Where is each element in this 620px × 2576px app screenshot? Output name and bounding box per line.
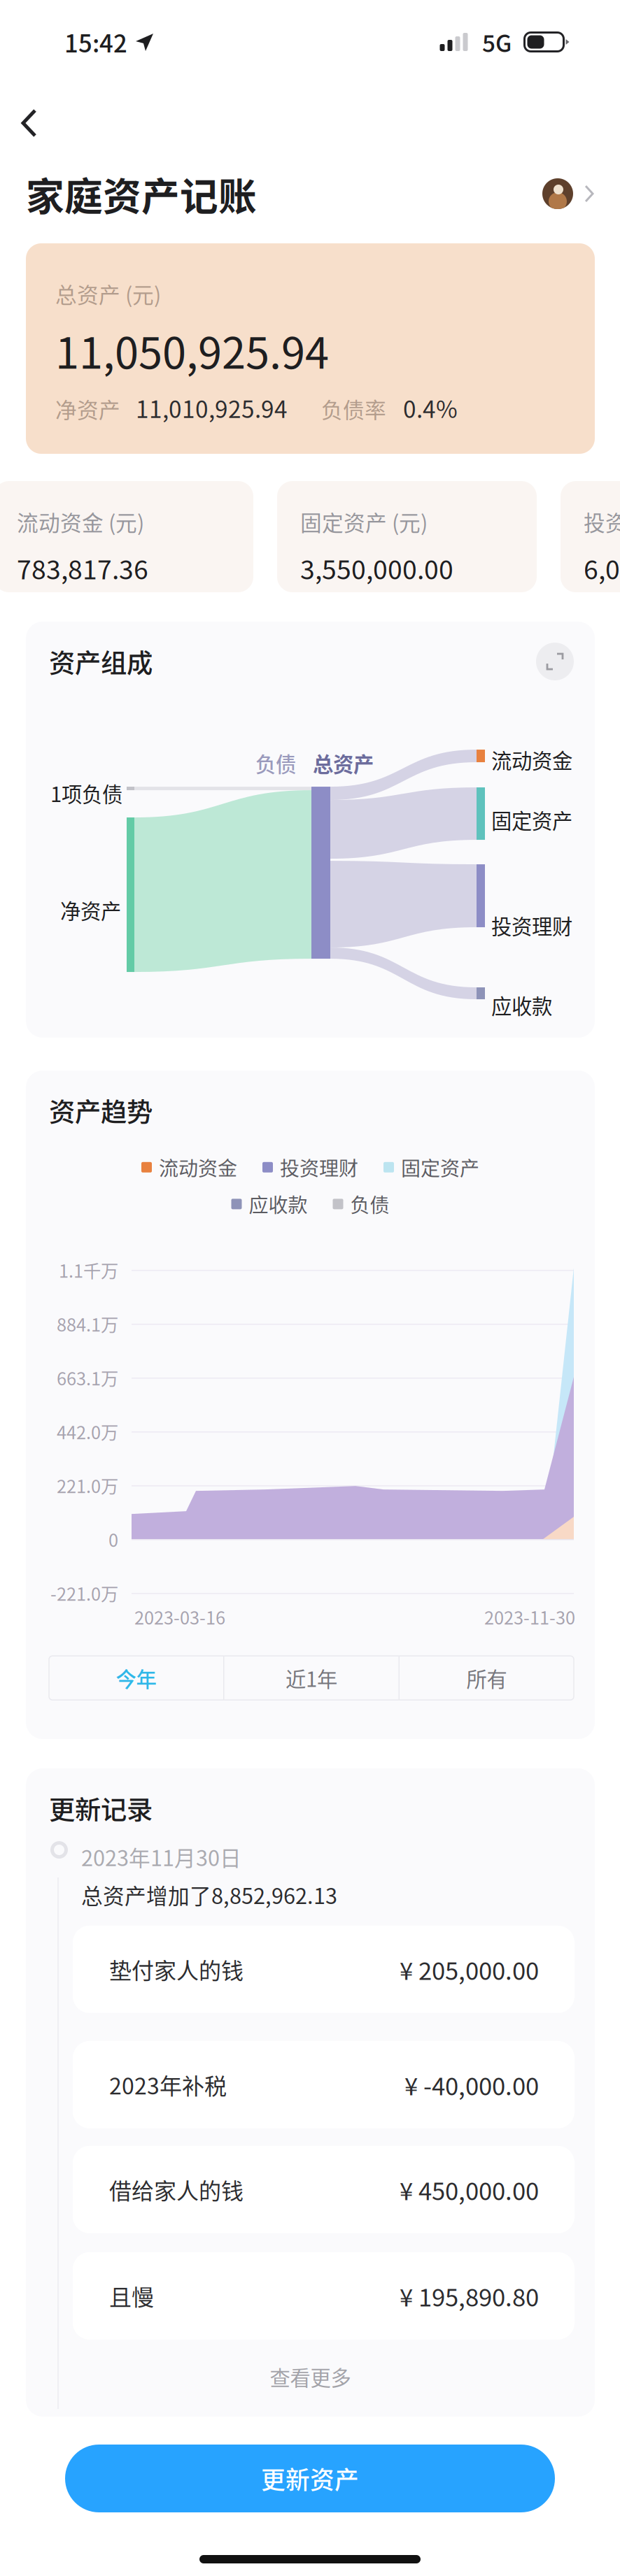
button[interactable]: Expand chart — [536, 643, 574, 680]
staticText: 流动资金 — [159, 1153, 237, 1181]
staticText: 2023-03-16 — [134, 1604, 225, 1630]
staticText: 负债 — [255, 748, 296, 778]
staticText: 固定资产 — [491, 805, 572, 835]
staticText: 更新记录 — [49, 1789, 153, 1827]
staticText: 资产组成 — [49, 643, 153, 680]
staticText: 15:42 — [64, 24, 127, 60]
staticText: 更新资产 — [261, 2461, 359, 2496]
staticText: 固定资产 (元) — [300, 506, 428, 537]
staticText: 且慢 — [109, 2280, 154, 2312]
button[interactable]: 流动资金 (元) — [0, 481, 253, 592]
staticText: 11,050,925.94 — [55, 319, 329, 381]
staticText: 今年 — [116, 1663, 156, 1693]
button[interactable]: 更新资产 — [65, 2445, 555, 2512]
button[interactable]: 投资理财 (元) — [561, 481, 620, 592]
staticText: 总资产 — [313, 748, 374, 778]
staticText: 净资产 — [55, 393, 120, 424]
staticText: 投资理财 (元) — [584, 506, 620, 537]
staticText: 垫付家人的钱 — [109, 1953, 244, 1985]
staticText: 资产趋势 — [49, 1092, 153, 1129]
button[interactable]: 所有 — [400, 1656, 574, 1700]
staticText: 应收款 — [249, 1190, 308, 1218]
button[interactable]: 且慢 — [73, 2252, 575, 2340]
staticText: 0 — [108, 1526, 118, 1552]
button[interactable]: 近1年 — [224, 1656, 399, 1700]
button[interactable]: 查看更多 — [26, 2362, 595, 2391]
staticText: 固定资产 — [401, 1153, 479, 1181]
staticText: ¥ 205,000.00 — [400, 1952, 539, 1987]
staticText: 借给家人的钱 — [109, 2173, 244, 2206]
staticText: 投资理财 — [491, 910, 572, 940]
staticText: 5G — [482, 25, 512, 59]
staticText: 2023年补税 — [109, 2068, 227, 2101]
button[interactable]: Account — [542, 172, 595, 215]
staticText: 442.0万 — [57, 1419, 118, 1444]
button[interactable]: 2023年补税 — [73, 2041, 575, 2128]
staticText: 所有 — [466, 1663, 507, 1693]
button[interactable]: 固定资产 (元) — [277, 481, 537, 592]
staticText: 总资产增加了8,852,962.13 — [81, 1879, 337, 1910]
staticText: 查看更多 — [270, 2362, 351, 2391]
staticText: 221.0万 — [57, 1472, 118, 1498]
button[interactable]: 垫付家人的钱 — [73, 1926, 575, 2013]
staticText: 近1年 — [286, 1663, 337, 1693]
button[interactable]: 今年 — [49, 1656, 223, 1700]
staticText: 总资产 (元) — [55, 278, 161, 309]
staticText: 流动资金 (元) — [17, 506, 144, 537]
staticText: ¥ 195,890.80 — [400, 2278, 539, 2313]
staticText: 1项负债 — [50, 778, 122, 808]
staticText: 11,010,925.94 — [136, 391, 288, 425]
staticText: 2023年11月30日 — [81, 1841, 241, 1872]
staticText: 0.4% — [403, 391, 458, 425]
staticText: 783,817.36 — [17, 549, 148, 587]
staticText: 投资理财 — [280, 1153, 358, 1181]
staticText: 6,000,000.00 — [584, 549, 620, 587]
staticText: -221.0万 — [50, 1580, 118, 1606]
staticText: 流动资金 — [491, 745, 572, 774]
staticText: 负债 — [350, 1190, 389, 1218]
staticText: ¥ 450,000.00 — [400, 2172, 539, 2207]
staticText: 2023-11-30 — [484, 1604, 575, 1630]
staticText: 净资产 — [60, 895, 121, 925]
staticText: 负债率 — [321, 393, 386, 424]
staticText: 1.1千万 — [59, 1257, 118, 1283]
staticText: 家庭资产记账 — [26, 166, 257, 221]
button[interactable]: 借给家人的钱 — [73, 2146, 575, 2233]
staticText: ¥ -40,000.00 — [404, 2067, 539, 2102]
staticText: 663.1万 — [57, 1365, 118, 1390]
staticText: 884.1万 — [57, 1311, 118, 1337]
staticText: 3,550,000.00 — [300, 549, 453, 587]
staticText: 应收款 — [491, 990, 552, 1020]
button[interactable]: Back — [0, 102, 59, 144]
